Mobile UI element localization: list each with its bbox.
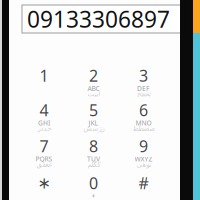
- button[interactable]: 8: [69, 133, 118, 171]
- staticText: +: [91, 192, 95, 200]
- staticText: ABC: [87, 84, 99, 93]
- staticText: ∗: [37, 174, 50, 192]
- staticText: JKL: [88, 119, 98, 127]
- staticText: 3: [139, 65, 148, 86]
- button[interactable]: 7: [19, 133, 68, 171]
- staticText: خدذر: [37, 125, 51, 132]
- staticText: 9: [139, 135, 148, 157]
- button[interactable]: #: [119, 170, 168, 200]
- staticText: PQRS: [35, 155, 52, 163]
- staticText: ثجچح: [136, 90, 150, 98]
- button[interactable]: 4: [19, 97, 68, 135]
- staticText: ابپت: [87, 90, 100, 98]
- button[interactable]: 5: [69, 97, 118, 135]
- staticText: 6: [139, 99, 148, 121]
- staticText: 8: [89, 135, 98, 157]
- staticText: 1: [39, 65, 48, 86]
- button[interactable]: 6: [119, 97, 168, 135]
- staticText: DEF: [137, 84, 150, 93]
- staticText: 5: [89, 99, 98, 121]
- staticText: 09133306897: [27, 4, 170, 34]
- staticText: #: [138, 172, 148, 194]
- staticText: 4: [39, 99, 48, 121]
- staticText: MNO: [135, 119, 151, 127]
- button[interactable]: ∗: [19, 170, 68, 200]
- staticText: GHI: [38, 119, 50, 127]
- button[interactable]: 9: [119, 133, 168, 171]
- staticText: زژسش: [83, 125, 104, 132]
- staticText: WXYZ: [134, 155, 152, 163]
- button[interactable]: 1: [19, 62, 68, 100]
- button[interactable]: 0: [69, 170, 118, 200]
- staticText: کگلم: [87, 161, 100, 168]
- staticText: صضطظ: [132, 125, 155, 132]
- staticText: عغفق: [36, 161, 52, 168]
- staticText: 2: [89, 65, 98, 86]
- button[interactable]: 3: [119, 62, 168, 100]
- staticText: 0: [89, 172, 98, 194]
- button[interactable]: 2: [69, 62, 118, 100]
- staticText: TUV: [87, 155, 100, 163]
- staticText: نوهی: [136, 161, 151, 168]
- staticText: 7: [39, 135, 48, 157]
